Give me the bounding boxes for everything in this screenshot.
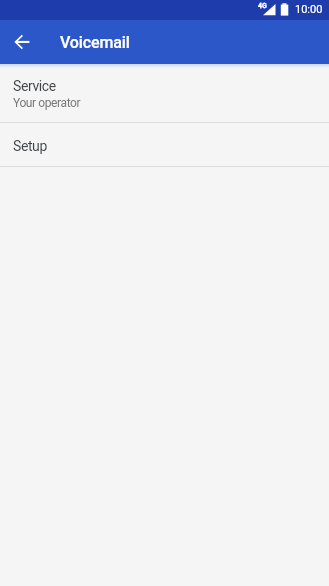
- staticText: Setup: [13, 138, 47, 154]
- button[interactable]: Setup: [0, 123, 329, 166]
- staticText: Voicemail: [60, 33, 130, 52]
- button[interactable]: Service: [0, 64, 329, 122]
- button[interactable]: Back: [0, 20, 44, 64]
- staticText: Your operator: [13, 96, 81, 110]
- staticText: Service: [13, 78, 56, 94]
- staticText: 10:00: [295, 3, 323, 16]
- staticText: 4G: [258, 2, 267, 10]
